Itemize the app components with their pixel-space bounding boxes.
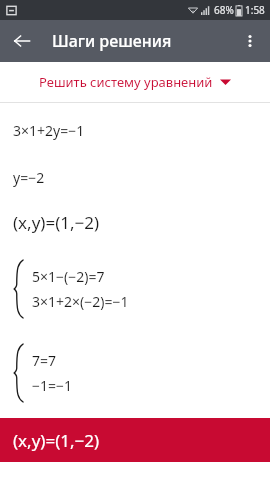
staticText: 5×1−(−2)=7 (32, 267, 105, 286)
button[interactable]: Back (4, 23, 40, 59)
staticText: 3×1+2y=−1 (13, 121, 85, 140)
staticText: Шаги решения (52, 30, 172, 52)
button[interactable]: Решить систему уравнений (0, 62, 270, 102)
button[interactable]: (x,y)=(1,−2) (0, 418, 270, 462)
staticText: (x,y)=(1,−2) (13, 211, 100, 234)
staticText: 1:58 (245, 3, 265, 17)
staticText: 3×1+2×(−2)=−1 (32, 292, 129, 311)
staticText: −1=−1 (32, 376, 73, 395)
staticText: (x,y)=(1,−2) (13, 429, 100, 452)
staticText: 68% (214, 3, 234, 17)
staticText: y=−2 (13, 168, 45, 187)
staticText: 7=7 (32, 351, 57, 370)
staticText: Решить систему уравнений (39, 73, 213, 91)
button[interactable]: More options (232, 23, 268, 59)
